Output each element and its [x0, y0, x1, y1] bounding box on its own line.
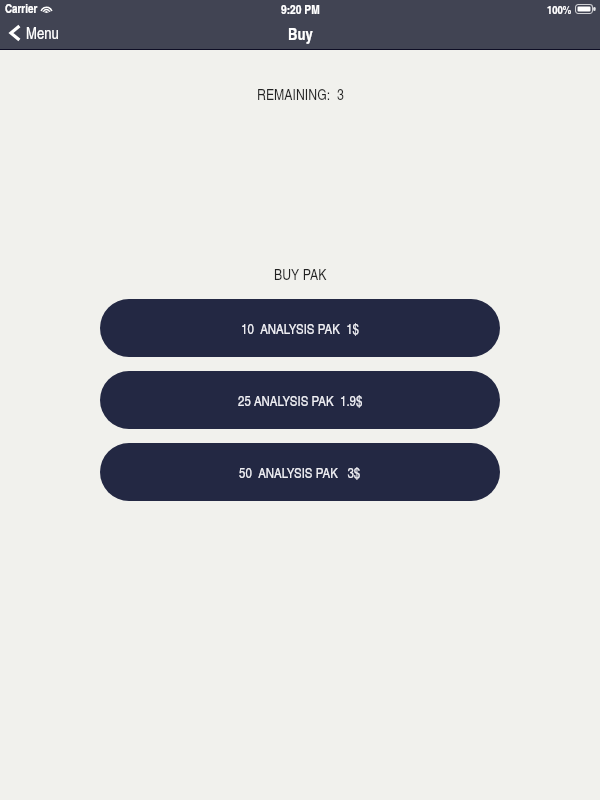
staticText: Menu [26, 22, 59, 44]
other: Back [9, 24, 21, 42]
staticText: Carrier [5, 0, 38, 17]
staticText: BUY PAK [274, 264, 327, 285]
button[interactable]: 50 ANALYSIS PAK 3$ [100, 443, 500, 501]
other: Battery 100 percent [575, 4, 596, 14]
button[interactable]: 10 ANALYSIS PAK 1$ [100, 299, 500, 357]
staticText: 100% [547, 1, 572, 17]
staticText: 25 ANALYSIS PAK 1.9$ [238, 391, 363, 410]
other: Wi-Fi [40, 3, 53, 13]
staticText: Buy [288, 22, 313, 45]
staticText: REMAINING: 3 [257, 84, 344, 105]
staticText: 10 ANALYSIS PAK 1$ [241, 319, 359, 338]
staticText: 9:20 PM [281, 0, 320, 17]
button[interactable]: Back [0, 19, 69, 47]
button[interactable]: 25 ANALYSIS PAK 1.9$ [100, 371, 500, 429]
staticText: 50 ANALYSIS PAK 3$ [239, 463, 361, 482]
